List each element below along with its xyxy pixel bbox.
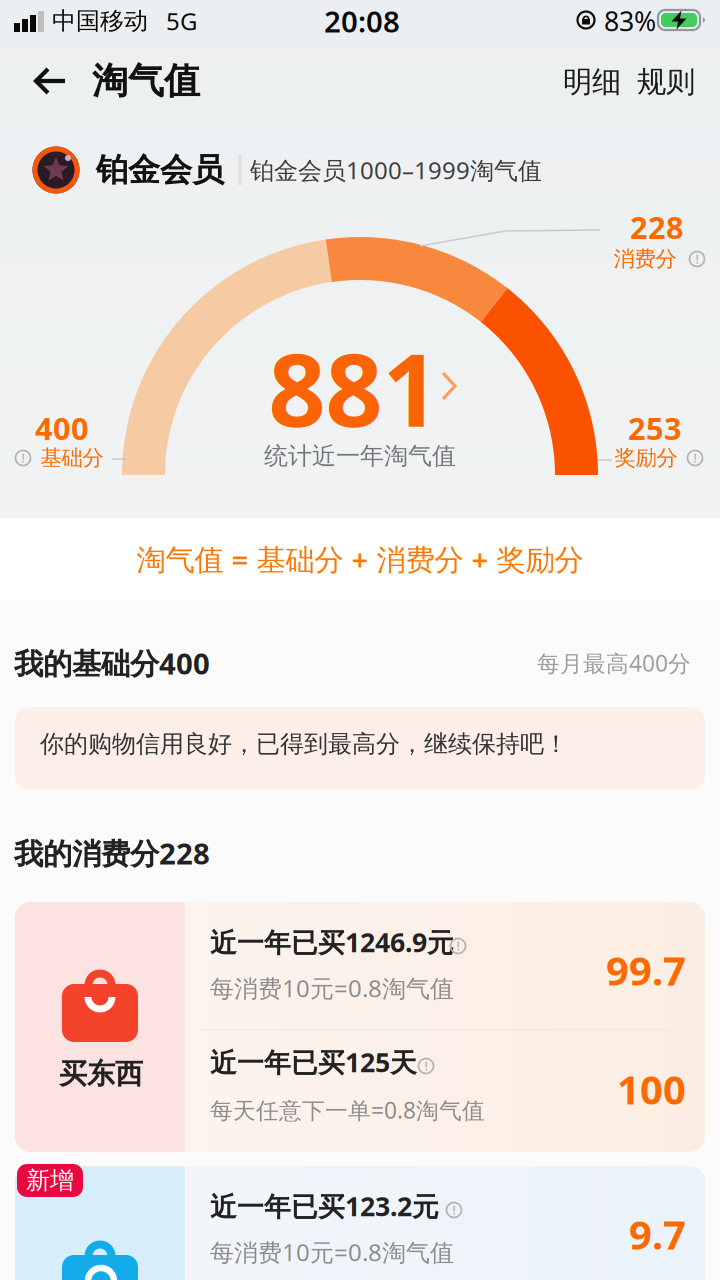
staticText: 你的购物信用良好，已得到最高分，继续保持吧！ [40,729,568,759]
button[interactable]: 新增 [17,1164,83,1197]
staticText: 每天任意下一单=0.8淘气值 [210,1095,485,1125]
staticText: 881 [268,322,439,454]
staticText: 买东西 [59,1057,143,1091]
staticText: 规则 [637,64,695,100]
button[interactable]: 规则 [631,58,701,106]
staticText: 253 [628,408,682,448]
button[interactable]: Back [23,58,77,104]
staticText: 统计近一年淘气值 [264,441,456,471]
staticText: 奖励分 [614,445,677,471]
staticText: 明细 [563,64,621,100]
staticText: 每消费10元=0.8淘气值 [210,972,454,1004]
staticText: ! [693,450,696,466]
staticText: 400 [35,408,89,448]
staticText: 228 [630,207,684,247]
staticText: ! [424,1058,427,1074]
staticText: 淘气值 [92,59,200,103]
staticText: 中国移动 [52,6,148,36]
staticText: ! [456,938,459,954]
button[interactable]: 基础分说明 [15,450,31,466]
staticText: 每消费10元=0.8淘气值 [210,1236,454,1268]
button[interactable]: 近一年已买1246.9元 [200,902,700,1027]
staticText: 铂金会员1000–1999淘气值 [250,154,542,186]
staticText: 83% [604,3,656,39]
staticText: 每月最高400分 [537,648,691,678]
staticText: 基础分 [40,445,103,471]
staticText: 铂金会员 [96,150,224,190]
staticText: 我的消费分228 [14,833,210,872]
staticText: ! [695,251,698,267]
staticText: ! [21,450,24,466]
staticText: 5G [166,5,197,37]
staticText: ! [452,1202,455,1218]
button[interactable]: 明细 [557,58,627,106]
staticText: 20:08 [324,1,400,40]
staticText: 9.7 [629,1207,686,1260]
button[interactable]: 消费分说明 [689,251,705,267]
button[interactable]: 近一年已买125天 [200,1030,700,1152]
staticText: 近一年已买125天 [210,1044,417,1080]
staticText: 消费分 [613,246,676,272]
staticText: 近一年已买1246.9元 [210,924,454,960]
staticText: 淘气值 = 基础分 + 消费分 + 奖励分 [136,539,583,578]
staticText: 我的基础分400 [14,643,210,682]
button[interactable]: 近一年已买123.2元 [200,1166,700,1280]
staticText: 新增 [26,1166,74,1195]
button[interactable]: 奖励分说明 [687,450,703,466]
button[interactable]: 铂金会员 [28,142,568,198]
staticText: 100 [617,1062,686,1115]
button[interactable]: 淘气值详情 [258,328,468,448]
staticText: 99.7 [606,943,686,996]
staticText: 近一年已买123.2元 [210,1188,439,1224]
